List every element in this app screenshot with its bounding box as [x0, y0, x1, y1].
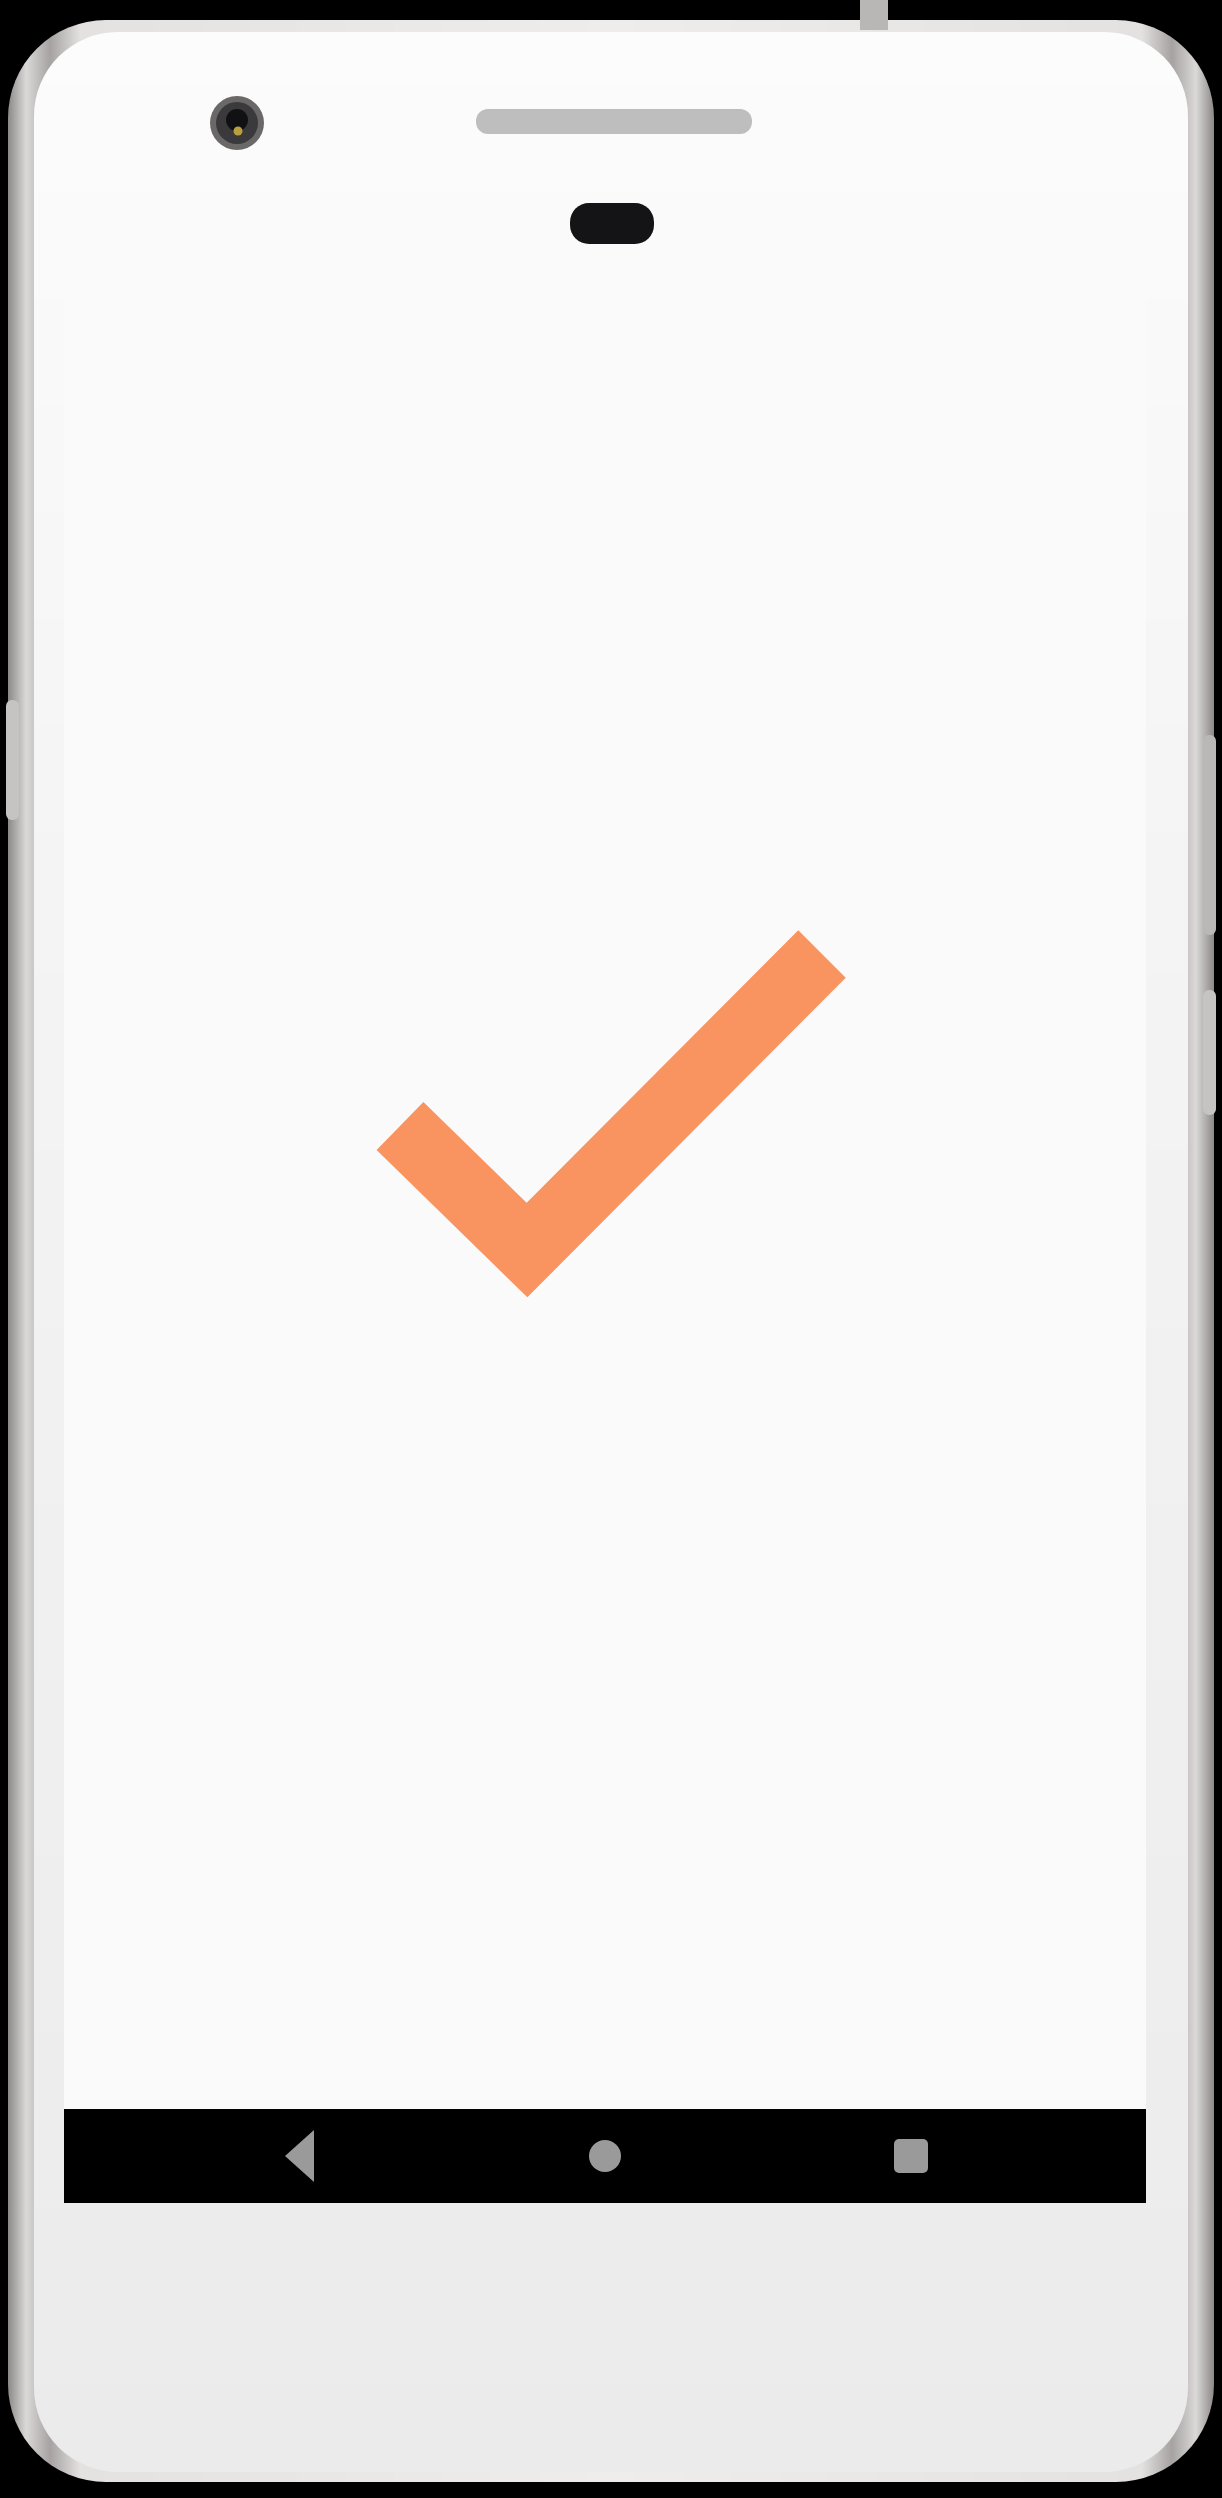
button[interactable]: Back: [215, 2109, 385, 2203]
button[interactable]: Success check: [64, 283, 1146, 2109]
button[interactable]: Home: [520, 2109, 690, 2203]
button[interactable]: Recent apps: [825, 2109, 995, 2203]
